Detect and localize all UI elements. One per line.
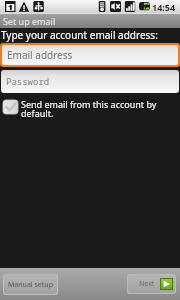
staticText: Type your account email address: (1, 28, 158, 42)
staticText: Email address (7, 48, 73, 62)
staticText: Set up email (3, 15, 56, 27)
button[interactable]: Email address (2, 45, 178, 65)
staticText: Next (139, 279, 155, 289)
staticText: 14:54 (152, 1, 176, 13)
button[interactable]: Send email from this account by default. (2, 98, 180, 120)
button[interactable]: Password (1, 70, 179, 93)
staticText: Manual setup (8, 280, 53, 290)
button[interactable]: Next (128, 275, 175, 293)
button[interactable]: Manual setup (4, 275, 57, 294)
staticText: Send email from this account by default. (21, 98, 158, 120)
staticText: Password (6, 75, 50, 87)
